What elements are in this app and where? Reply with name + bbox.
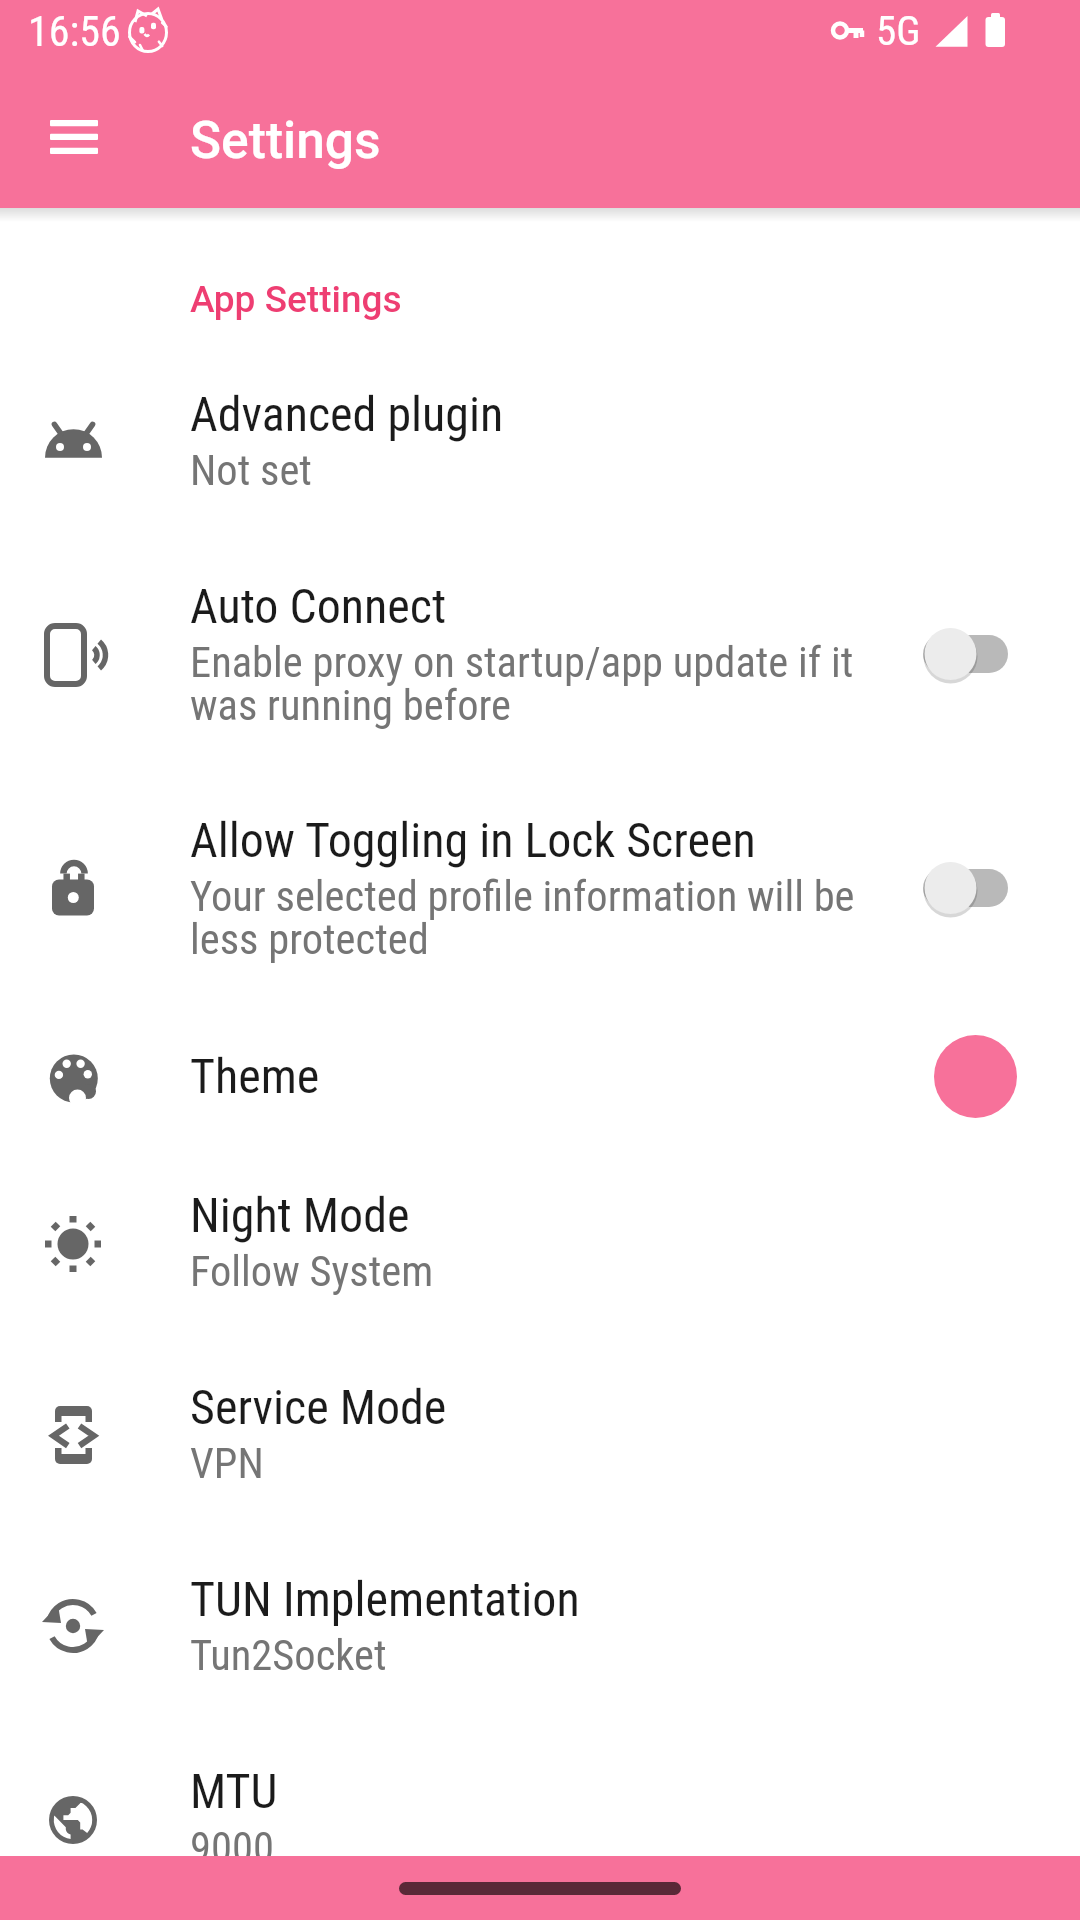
button[interactable]: Service Mode	[0, 1344, 1080, 1536]
staticText: Your selected profile information will b…	[190, 872, 855, 964]
staticText: App Settings	[190, 278, 402, 321]
staticText: Service Mode	[190, 1379, 447, 1435]
staticText: Advanced plugin	[190, 386, 504, 442]
staticText: Not set	[190, 446, 312, 496]
button[interactable]: TUN Implementation	[0, 1536, 1080, 1728]
staticText: 9000	[190, 1823, 274, 1873]
staticText: MTU	[190, 1763, 278, 1819]
staticText: 5G	[876, 7, 921, 55]
staticText: Theme	[190, 1048, 320, 1104]
button[interactable]	[50, 113, 98, 155]
button[interactable]: Advanced plugin	[0, 351, 1080, 543]
staticText: VPN	[190, 1439, 264, 1489]
button[interactable]: Auto Connect	[0, 543, 1080, 777]
staticText: Enable proxy on startup/app update if it…	[190, 638, 854, 730]
button[interactable]	[399, 1882, 681, 1895]
staticText: Follow System	[190, 1247, 434, 1297]
staticText: 16:56	[28, 7, 121, 56]
staticText: Tun2Socket	[190, 1631, 387, 1681]
staticText: Settings	[190, 110, 381, 170]
staticText: Auto Connect	[190, 578, 447, 634]
button[interactable]: MTU	[0, 1728, 1080, 1920]
button[interactable]: Allow Toggling in Lock Screen	[0, 777, 1080, 1011]
staticText: TUN Implementation	[190, 1571, 580, 1627]
button[interactable]: Night Mode	[0, 1152, 1080, 1344]
staticText: Night Mode	[190, 1187, 410, 1243]
staticText: Allow Toggling in Lock Screen	[190, 812, 756, 868]
button[interactable]: Theme	[0, 1011, 1080, 1152]
